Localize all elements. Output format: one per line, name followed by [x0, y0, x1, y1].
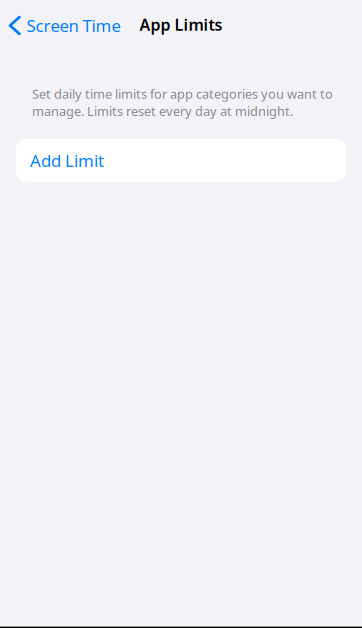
staticText: Screen Time	[26, 14, 120, 37]
staticText: Add Limit	[30, 149, 104, 172]
button[interactable]: Screen Time	[0, 4, 126, 42]
staticText: Set daily time limits for app categories…	[32, 85, 333, 120]
staticText: App Limits	[139, 14, 222, 35]
button[interactable]: Add Limit	[16, 139, 111, 182]
